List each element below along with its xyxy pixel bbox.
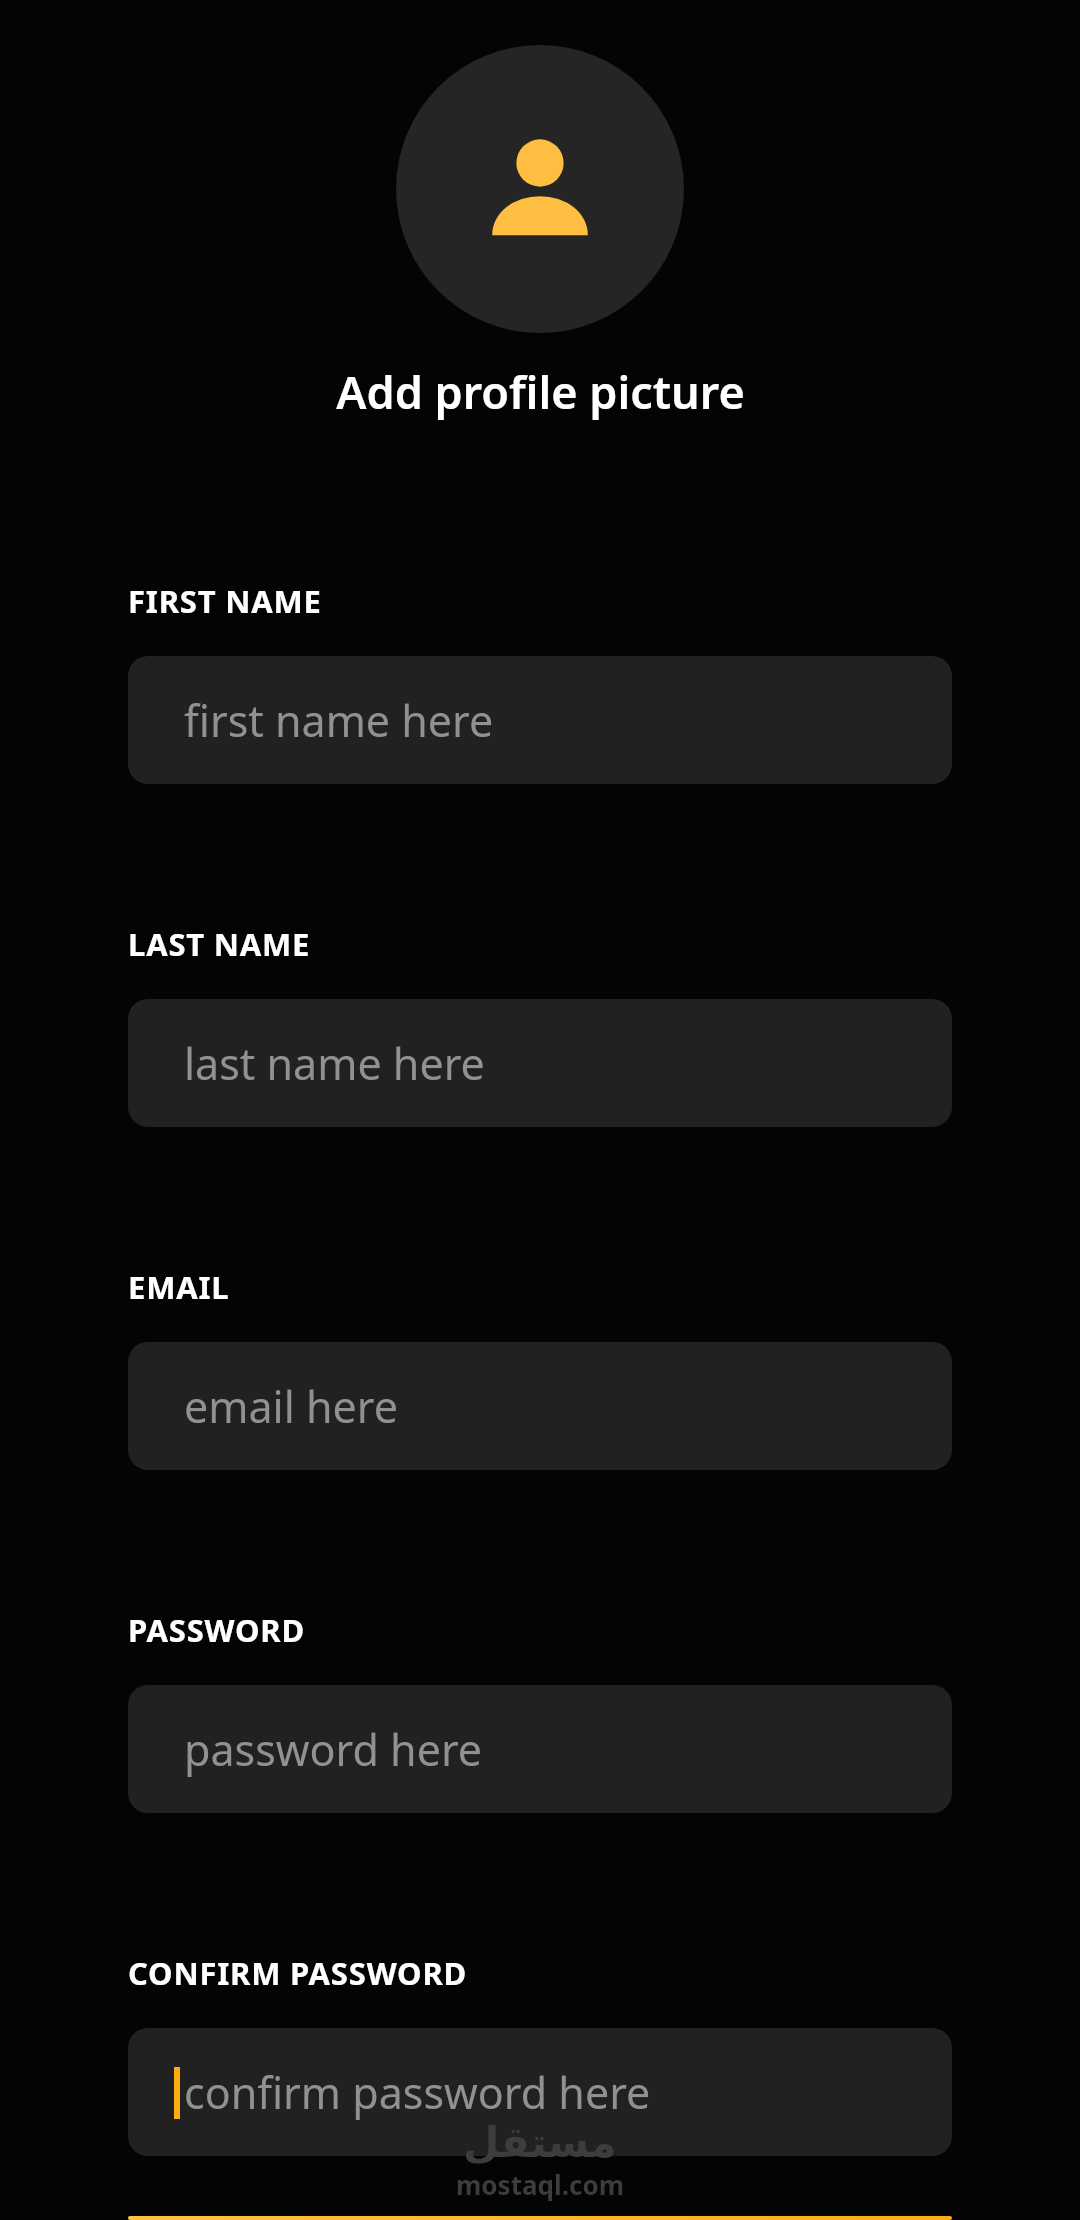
button[interactable]: Add profile picture	[396, 45, 684, 333]
staticText: EMAIL	[128, 1266, 230, 1308]
button[interactable]: password here	[128, 1685, 952, 1813]
staticText: confirm password here	[184, 2063, 651, 2122]
staticText: email here	[184, 1377, 398, 1436]
staticText: first name here	[184, 691, 494, 750]
staticText: CONFIRM PASSWORD	[128, 1952, 468, 1994]
staticText: مستقل	[463, 2118, 617, 2167]
button[interactable]: confirm password here	[128, 2028, 952, 2156]
staticText: last name here	[184, 1034, 485, 1093]
staticText: REGISTER	[439, 2216, 641, 2220]
button[interactable]: last name here	[128, 999, 952, 1127]
staticText: PASSWORD	[128, 1609, 305, 1651]
staticText: mostaql.com	[456, 2167, 625, 2202]
button[interactable]: email here	[128, 1342, 952, 1470]
button[interactable]: first name here	[128, 656, 952, 784]
button[interactable]: REGISTER	[128, 2216, 952, 2220]
staticText: FIRST NAME	[128, 580, 322, 622]
staticText: password here	[184, 1720, 483, 1779]
staticText: LAST NAME	[128, 923, 311, 965]
staticText: Add profile picture	[336, 361, 745, 422]
